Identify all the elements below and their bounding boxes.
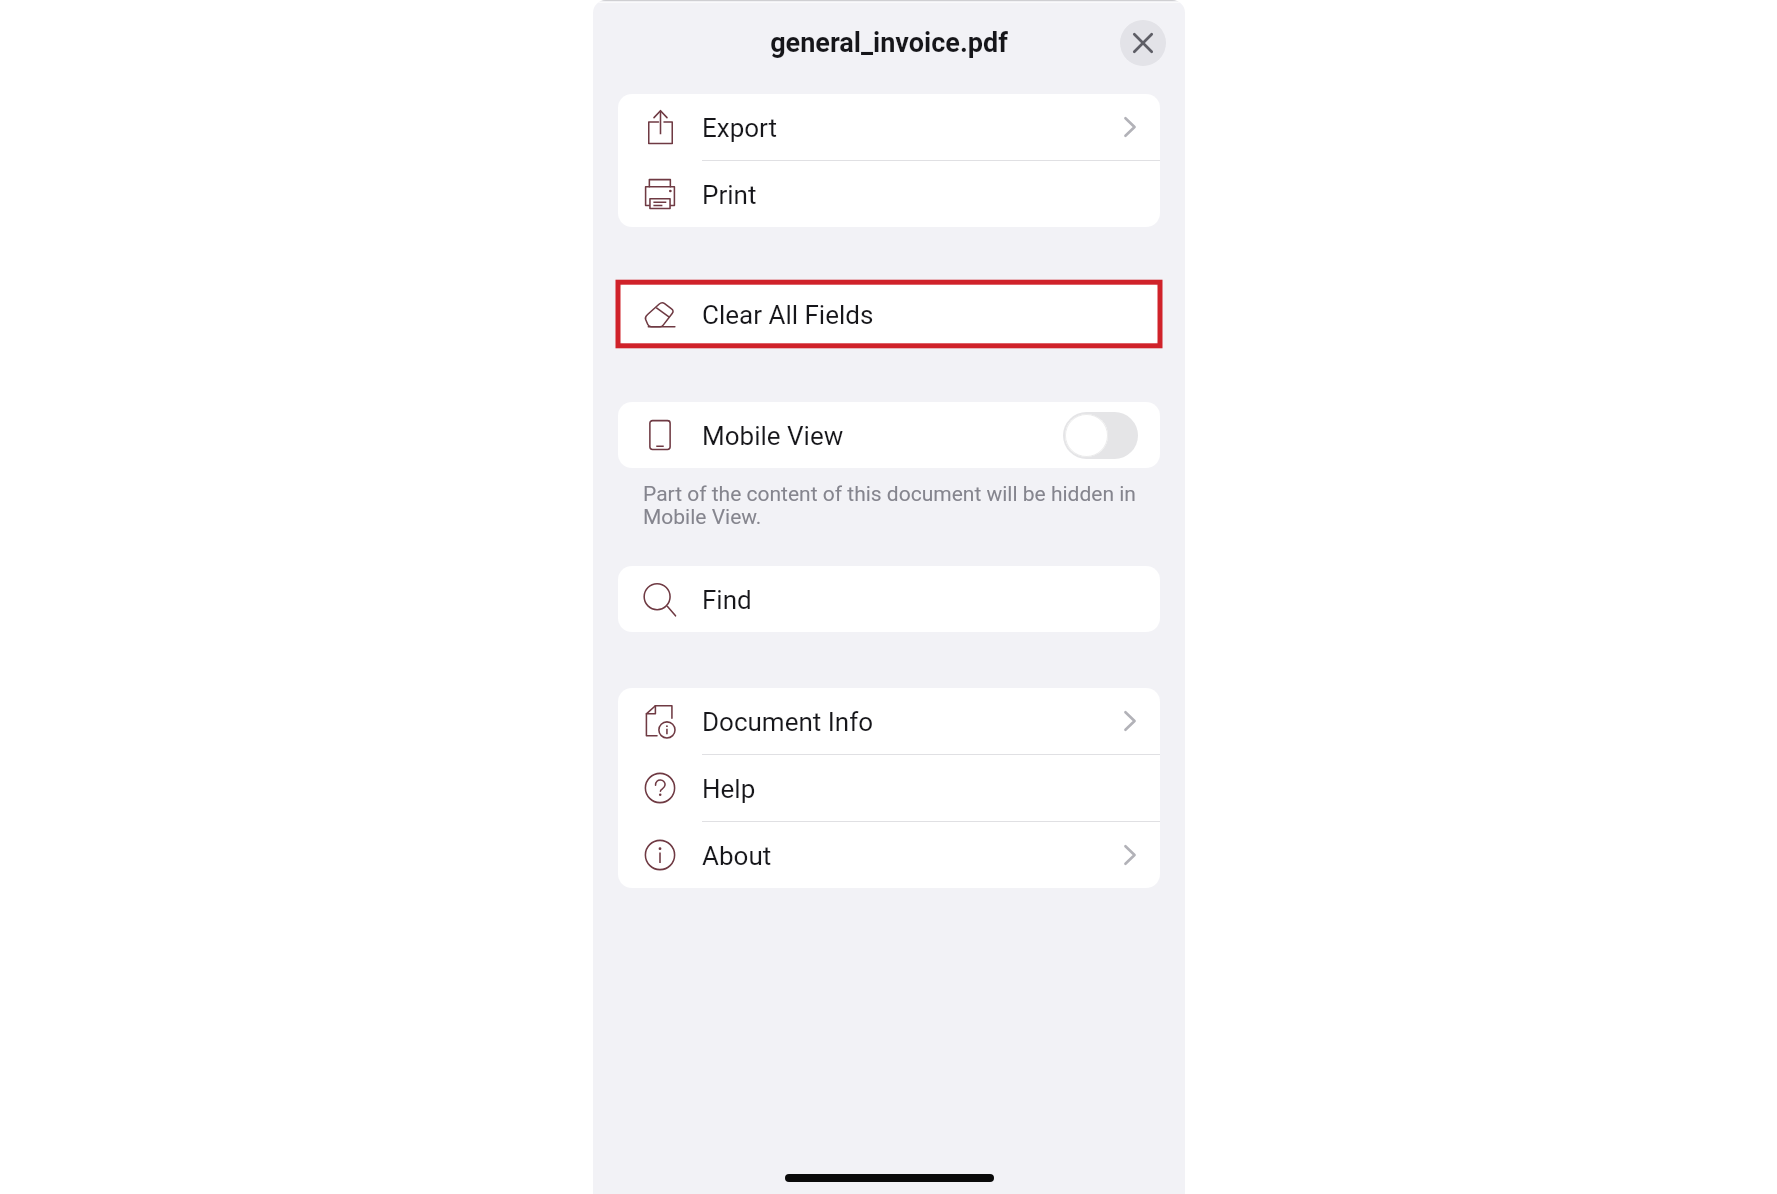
button[interactable]: Print: [618, 161, 1160, 227]
button[interactable]: Mobile View: [618, 402, 1160, 468]
button[interactable]: Close: [1120, 20, 1166, 66]
button[interactable]: Document Info: [618, 688, 1160, 754]
button[interactable]: Help: [618, 755, 1160, 821]
button[interactable]: Export: [618, 94, 1160, 160]
staticText: About: [702, 841, 772, 871]
staticText: Part of the content of this document wil…: [643, 482, 1143, 529]
button[interactable]: About: [618, 822, 1160, 888]
staticText: Export: [702, 113, 778, 143]
staticText: general_invoice.pdf: [770, 27, 1008, 59]
staticText: Clear All Fields: [702, 300, 874, 330]
staticText: Find: [702, 585, 752, 615]
staticText: Document Info: [702, 707, 874, 737]
button[interactable]: Find: [618, 566, 1160, 632]
staticText: Print: [702, 180, 757, 210]
staticText: Help: [702, 774, 756, 804]
staticText: Mobile View: [702, 421, 844, 451]
button[interactable]: Clear All Fields: [618, 281, 1160, 347]
